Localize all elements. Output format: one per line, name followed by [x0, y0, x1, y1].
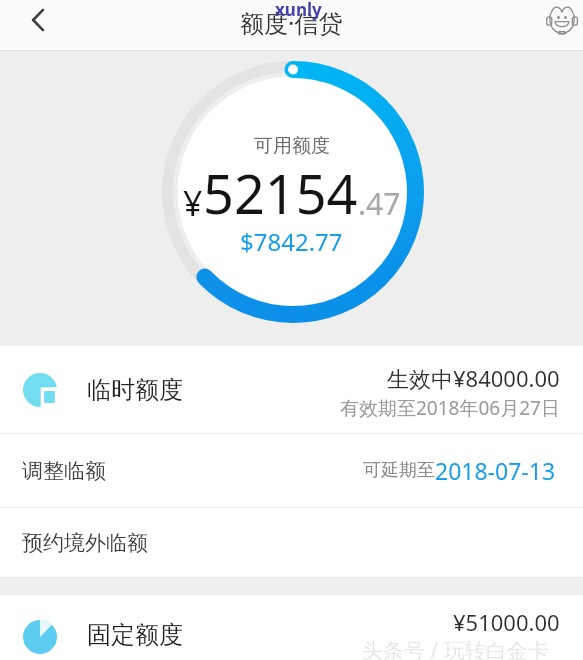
button[interactable]: 调整临额: [0, 434, 583, 507]
button[interactable]: Back: [14, 0, 60, 43]
staticText: 额度·信贷: [240, 6, 343, 39]
staticText: ¥51000.00: [453, 607, 560, 637]
staticText: 可用额度: [254, 134, 330, 158]
staticText: xunly: [275, 0, 322, 21]
staticText: 52154: [203, 156, 358, 230]
button[interactable]: Profile avatar: [542, 0, 582, 40]
button[interactable]: 临时额度: [0, 346, 583, 433]
staticText: 生效中¥84000.00: [387, 363, 560, 393]
staticText: .47: [358, 183, 401, 224]
staticText: 可延期至: [363, 459, 435, 482]
staticText: 头条号 / 玩转白金卡: [362, 636, 549, 660]
staticText: 临时额度: [87, 375, 183, 405]
staticText: $7842.77: [240, 225, 343, 258]
button[interactable]: 固定额度: [0, 595, 583, 660]
staticText: 固定额度: [87, 620, 183, 650]
staticText: 调整临额: [22, 458, 106, 484]
staticText: 2018-07-13: [435, 455, 556, 486]
button[interactable]: 预约境外临额: [0, 508, 583, 577]
staticText: 有效期至2018年06月27日: [340, 395, 560, 421]
staticText: ¥: [183, 180, 203, 226]
staticText: 预约境外临额: [22, 530, 148, 556]
